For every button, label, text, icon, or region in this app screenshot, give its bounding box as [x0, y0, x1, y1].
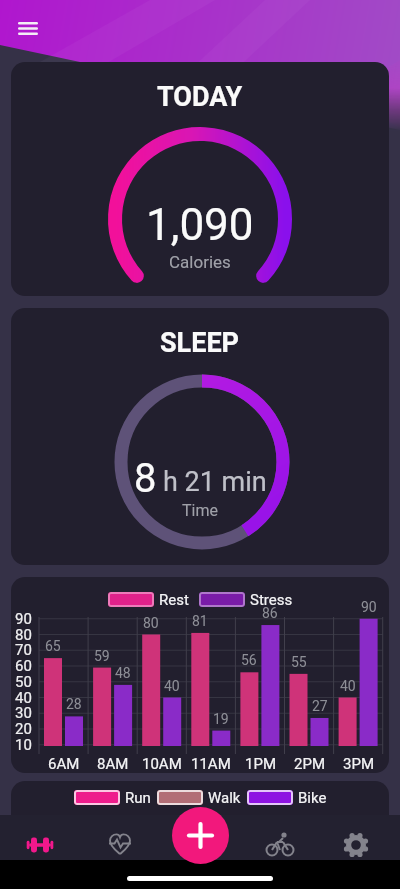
staticText: 20: [15, 720, 32, 737]
staticText: 59: [94, 648, 110, 663]
staticText: h 21 min: [163, 466, 267, 498]
button[interactable]: [12, 15, 44, 41]
staticText: Walk: [208, 789, 241, 806]
button[interactable]: [22, 827, 58, 863]
staticText: 2PM: [294, 755, 325, 772]
button[interactable]: TODAY: [11, 62, 389, 296]
button[interactable]: Run: [11, 781, 389, 889]
staticText: 19: [213, 711, 229, 726]
staticText: 48: [115, 665, 131, 680]
button[interactable]: [262, 827, 298, 863]
staticText: Stress: [250, 591, 293, 608]
button[interactable]: [338, 827, 374, 863]
staticText: 8: [134, 455, 157, 502]
staticText: 70: [15, 641, 32, 658]
staticText: 80: [143, 615, 159, 630]
button[interactable]: [102, 827, 138, 863]
staticText: 50: [15, 673, 32, 690]
staticText: Run: [125, 789, 151, 806]
staticText: SLEEP: [160, 327, 240, 355]
staticText: Bike: [298, 789, 327, 806]
staticText: 27: [312, 698, 328, 713]
staticText: 81: [192, 613, 208, 628]
staticText: 56: [241, 652, 257, 667]
staticText: 1,090: [146, 199, 254, 251]
button[interactable]: Rest: [11, 577, 389, 773]
staticText: 60: [15, 657, 32, 674]
staticText: 10: [15, 736, 32, 753]
staticText: Calories: [169, 252, 231, 272]
staticText: Time: [182, 501, 218, 520]
staticText: 86: [262, 605, 278, 620]
staticText: Rest: [159, 591, 189, 608]
staticText: 11AM: [191, 755, 231, 772]
staticText: 3PM: [343, 755, 374, 772]
staticText: 65: [45, 638, 61, 653]
staticText: 55: [291, 654, 307, 669]
staticText: 90: [15, 610, 32, 627]
staticText: 40: [15, 689, 32, 706]
staticText: 40: [164, 678, 180, 693]
staticText: 40: [340, 678, 356, 693]
staticText: 90: [361, 599, 377, 614]
button[interactable]: SLEEP: [11, 308, 389, 565]
staticText: 6AM: [48, 755, 80, 772]
staticText: 80: [15, 626, 32, 643]
staticText: 1PM: [245, 755, 276, 772]
staticText: TODAY: [157, 81, 243, 109]
button[interactable]: [172, 807, 229, 864]
staticText: 28: [66, 696, 82, 711]
staticText: 30: [15, 704, 32, 721]
staticText: 8AM: [97, 755, 129, 772]
staticText: 10AM: [142, 755, 182, 772]
